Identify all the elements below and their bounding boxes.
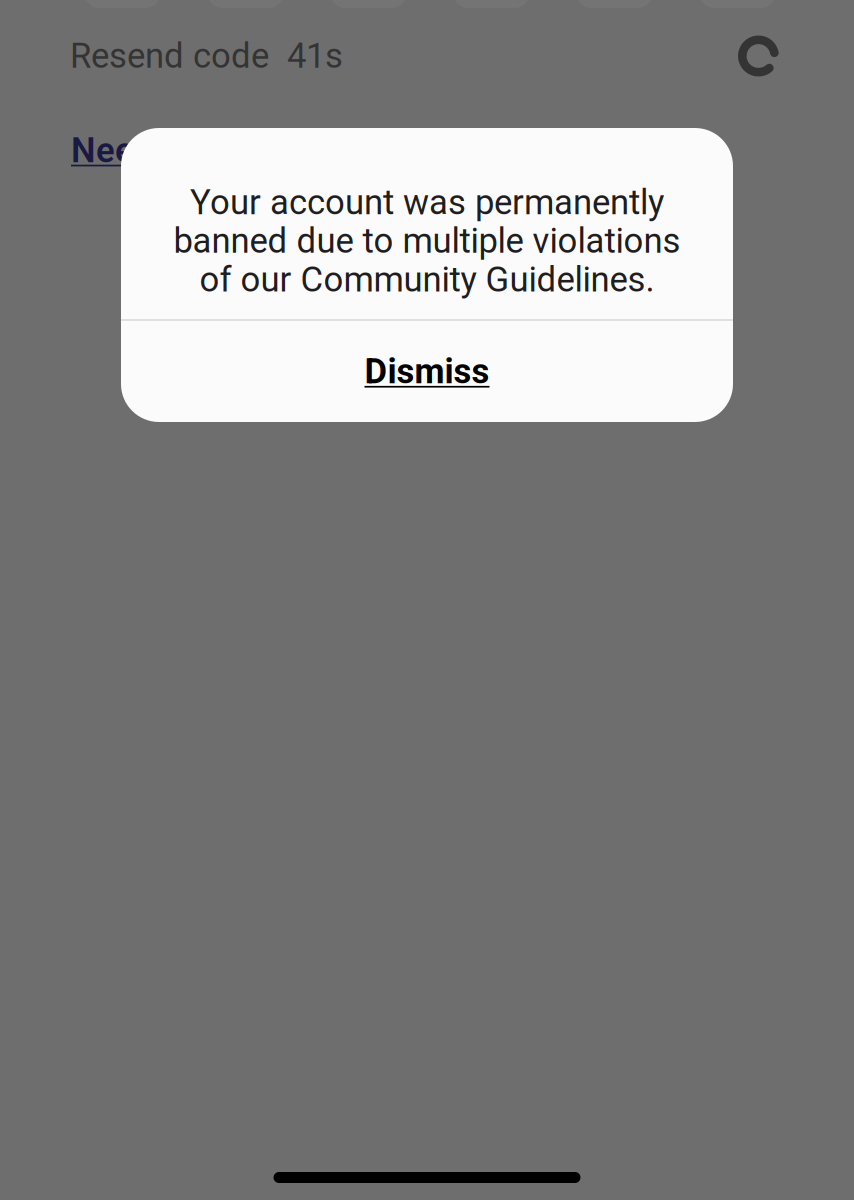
staticText: Dismiss <box>364 351 489 392</box>
button[interactable]: Resend code <box>738 35 779 76</box>
staticText: Need help? <box>71 130 247 171</box>
staticText: of our Community Guidelines. <box>199 259 654 300</box>
button[interactable]: Need help? <box>71 130 247 171</box>
button[interactable]: Dismiss <box>121 321 733 422</box>
staticText: Your account was permanently <box>190 182 664 223</box>
button[interactable]: Resend code 41s <box>70 33 343 79</box>
staticText: banned due to multiple violations <box>173 221 680 261</box>
staticText: Resend code 41s <box>70 36 343 76</box>
